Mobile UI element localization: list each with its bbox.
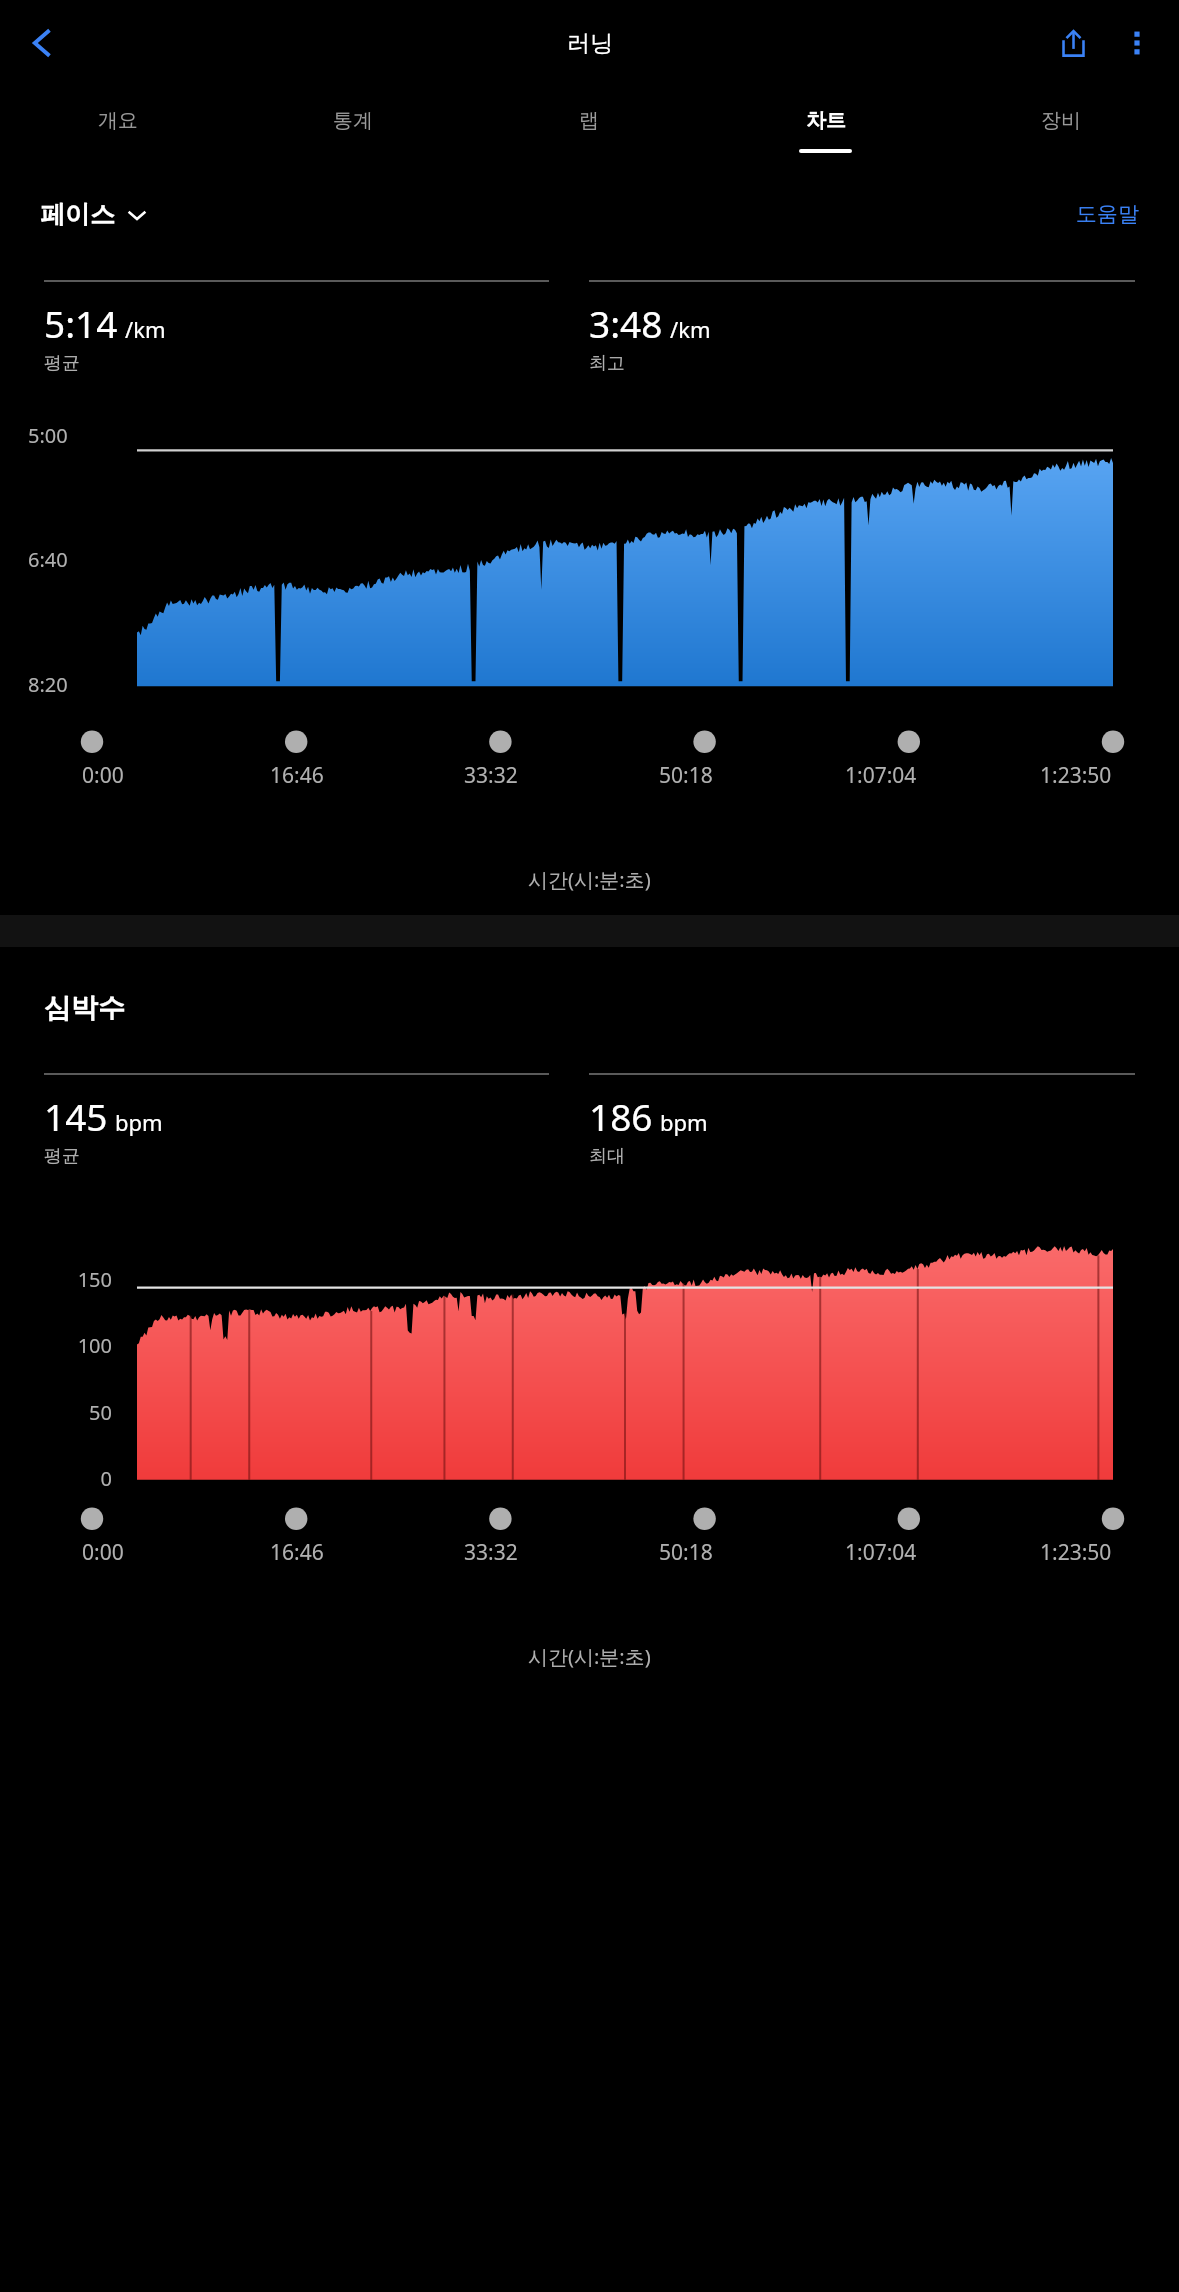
button[interactable]: 페이스 (40, 199, 147, 230)
staticText: 차트 (806, 108, 846, 133)
staticText: 장비 (1041, 108, 1081, 133)
staticText: 0 (0, 1465, 112, 1492)
button[interactable]: 도움말 (1076, 201, 1139, 227)
staticText: 33:32 (464, 1538, 518, 1567)
staticText: 개요 (98, 108, 138, 133)
staticText: 33:32 (464, 761, 518, 790)
staticText: 0:00 (82, 761, 124, 790)
staticText: 1:07:04 (845, 1538, 917, 1567)
staticText: 랩 (579, 108, 599, 133)
staticText: 150 (0, 1266, 112, 1293)
staticText: 1:23:50 (1040, 1538, 1112, 1567)
staticText: 3:48 (589, 298, 663, 348)
button[interactable]: 통계 (235, 86, 471, 178)
staticText: 최고 (589, 352, 625, 375)
button[interactable]: More options (1105, 11, 1169, 75)
staticText: 1:23:50 (1040, 761, 1112, 790)
button[interactable]: Share (1041, 11, 1105, 75)
staticText: 16:46 (270, 1538, 324, 1567)
staticText: 6:40 (28, 546, 68, 573)
staticText: 100 (0, 1332, 112, 1359)
staticText: 8:20 (28, 671, 68, 698)
staticText: /km (670, 314, 711, 344)
staticText: 페이스 (40, 199, 115, 230)
button[interactable]: 랩 (471, 86, 707, 178)
staticText: 50:18 (659, 761, 713, 790)
button[interactable]: Back (14, 15, 70, 71)
staticText: 시간(시:분:초) (528, 866, 651, 893)
staticText: 1:07:04 (845, 761, 917, 790)
button[interactable]: 장비 (943, 86, 1179, 178)
staticText: 러닝 (567, 29, 613, 58)
staticText: 평균 (44, 352, 80, 375)
staticText: 50:18 (659, 1538, 713, 1567)
staticText: 심박수 (44, 991, 125, 1025)
staticText: 186 (589, 1091, 653, 1141)
button[interactable]: 개요 (0, 86, 235, 178)
staticText: /km (125, 314, 166, 344)
staticText: 시간(시:분:초) (528, 1643, 651, 1670)
staticText: 145 (44, 1091, 108, 1141)
staticText: 50 (0, 1399, 112, 1426)
staticText: 평균 (44, 1145, 80, 1168)
staticText: 도움말 (1076, 201, 1139, 227)
staticText: 통계 (333, 108, 373, 133)
staticText: 5:14 (44, 298, 118, 348)
button[interactable]: 차트 (707, 86, 943, 178)
staticText: 0:00 (82, 1538, 124, 1567)
staticText: bpm (115, 1107, 163, 1137)
staticText: bpm (660, 1107, 708, 1137)
staticText: 16:46 (270, 761, 324, 790)
staticText: 최대 (589, 1145, 625, 1168)
staticText: 5:00 (28, 422, 68, 449)
